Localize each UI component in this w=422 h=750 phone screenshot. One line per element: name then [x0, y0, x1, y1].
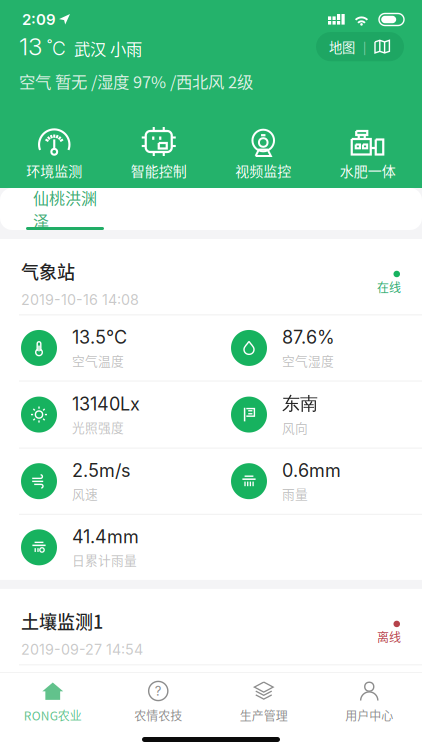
- staticText: 武汉 小雨: [66, 36, 142, 60]
- button[interactable]: 生产管理: [211, 679, 316, 724]
- staticText: 智能控制: [131, 160, 187, 181]
- staticText: |: [363, 38, 366, 55]
- staticText: 水肥一体: [340, 160, 396, 181]
- staticText: 环境监测: [26, 160, 82, 181]
- button[interactable]: 视频监控: [211, 124, 315, 180]
- staticText: 风向: [282, 418, 308, 437]
- staticText: 土壤湿度: [282, 701, 334, 719]
- staticText: 东南: [282, 392, 318, 415]
- staticText: 2:09: [22, 10, 56, 28]
- staticText: ?: [155, 683, 162, 699]
- button[interactable]: RONG农业: [0, 679, 105, 724]
- staticText: 土壤温度: [72, 701, 124, 719]
- staticText: 在线: [377, 278, 401, 296]
- staticText: ˚C: [42, 37, 66, 60]
- button[interactable]: ?: [105, 679, 211, 724]
- staticText: 0.6mm: [282, 460, 341, 481]
- staticText: 空气湿度: [282, 351, 334, 369]
- staticText: 13.5°C: [72, 326, 127, 348]
- staticText: 地图: [329, 37, 355, 56]
- staticText: 土壤监测1: [21, 608, 103, 634]
- staticText: RONG农业: [24, 706, 82, 724]
- staticText: 日累计雨量: [72, 550, 137, 569]
- button[interactable]: 环境监测: [2, 124, 106, 180]
- staticText: 生产管理: [240, 706, 288, 724]
- staticText: 风速: [72, 484, 98, 503]
- button[interactable]: 智能控制: [106, 124, 211, 180]
- staticText: 13: [19, 32, 42, 61]
- staticText: 2.5m/s: [72, 460, 131, 481]
- staticText: 用户中心: [345, 706, 393, 724]
- button[interactable]: 地图: [316, 32, 404, 61]
- staticText: 2019-09-27 14:54: [21, 641, 143, 658]
- staticText: 雨量: [282, 484, 308, 503]
- staticText: 农情农技: [134, 706, 182, 724]
- button[interactable]: 水肥一体: [315, 124, 420, 180]
- staticText: 空气 暂无 /湿度 97% /西北风 2级: [19, 69, 253, 93]
- button[interactable]: 用户中心: [316, 679, 422, 724]
- staticText: 离线: [377, 628, 401, 646]
- staticText: 13140Lx: [72, 393, 140, 415]
- staticText: 光照强度: [72, 418, 124, 436]
- staticText: 空气温度: [72, 351, 124, 369]
- staticText: 41.4mm: [72, 526, 139, 548]
- staticText: 仙桃洪渊泽: [33, 186, 97, 232]
- staticText: 87.6%: [282, 326, 335, 348]
- staticText: 视频监控: [235, 160, 291, 181]
- staticText: 2019-10-16 14:08: [21, 291, 139, 308]
- button[interactable]: 仙桃洪渊泽: [26, 188, 104, 230]
- staticText: 气象站: [21, 258, 75, 284]
